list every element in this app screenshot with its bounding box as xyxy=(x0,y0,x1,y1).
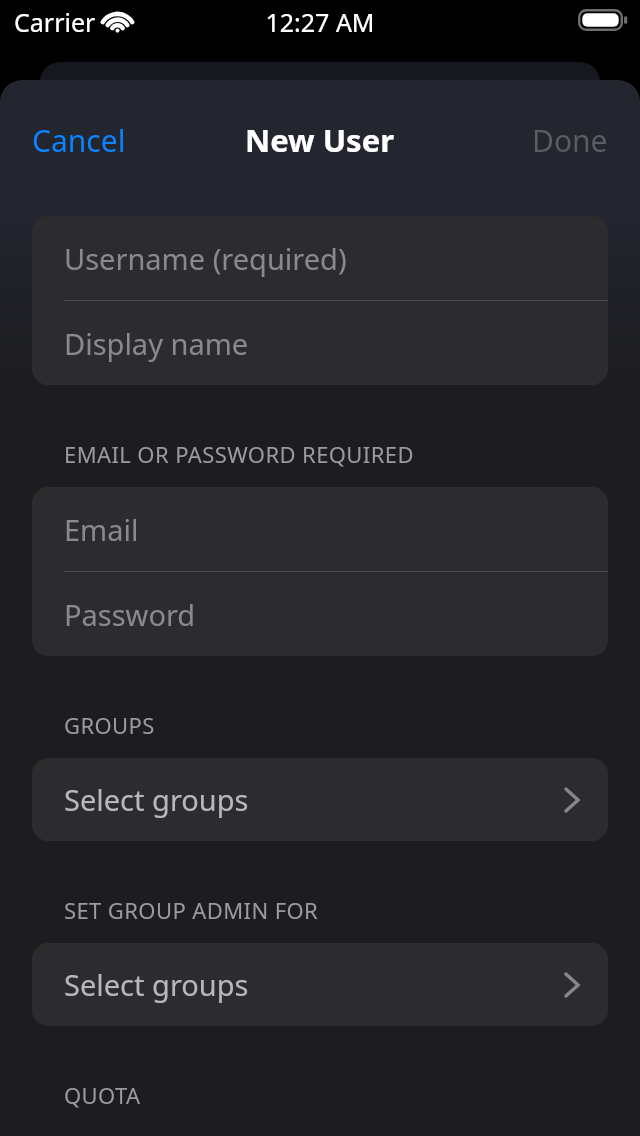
staticText: QUOTA xyxy=(64,1080,141,1110)
staticText: EMAIL OR PASSWORD REQUIRED xyxy=(64,439,414,469)
staticText: Username (required) xyxy=(64,239,347,278)
staticText: Display name xyxy=(64,324,249,363)
button[interactable]: Username (required) xyxy=(32,216,608,300)
staticText: Carrier xyxy=(14,5,96,39)
button[interactable]: Password xyxy=(32,572,608,656)
staticText: GROUPS xyxy=(64,710,155,740)
button[interactable]: Select groups xyxy=(32,758,608,841)
staticText: SET GROUP ADMIN FOR xyxy=(64,895,319,925)
other: Open group selection xyxy=(564,972,580,998)
button[interactable]: Cancel xyxy=(0,110,144,171)
staticText: Select groups xyxy=(64,780,249,819)
staticText: Select groups xyxy=(64,965,249,1004)
button[interactable]: Done xyxy=(514,110,640,171)
button[interactable]: Display name xyxy=(32,301,608,385)
staticText: Password xyxy=(64,595,196,634)
staticText: Email xyxy=(64,510,139,549)
button[interactable]: Select groups xyxy=(32,943,608,1026)
staticText: 12:27 AM xyxy=(0,5,640,39)
staticText: Cancel xyxy=(32,120,126,161)
staticText: Done xyxy=(532,120,608,161)
button[interactable]: Email xyxy=(32,487,608,571)
other: Open group selection xyxy=(564,787,580,813)
staticText: New User xyxy=(245,119,395,161)
